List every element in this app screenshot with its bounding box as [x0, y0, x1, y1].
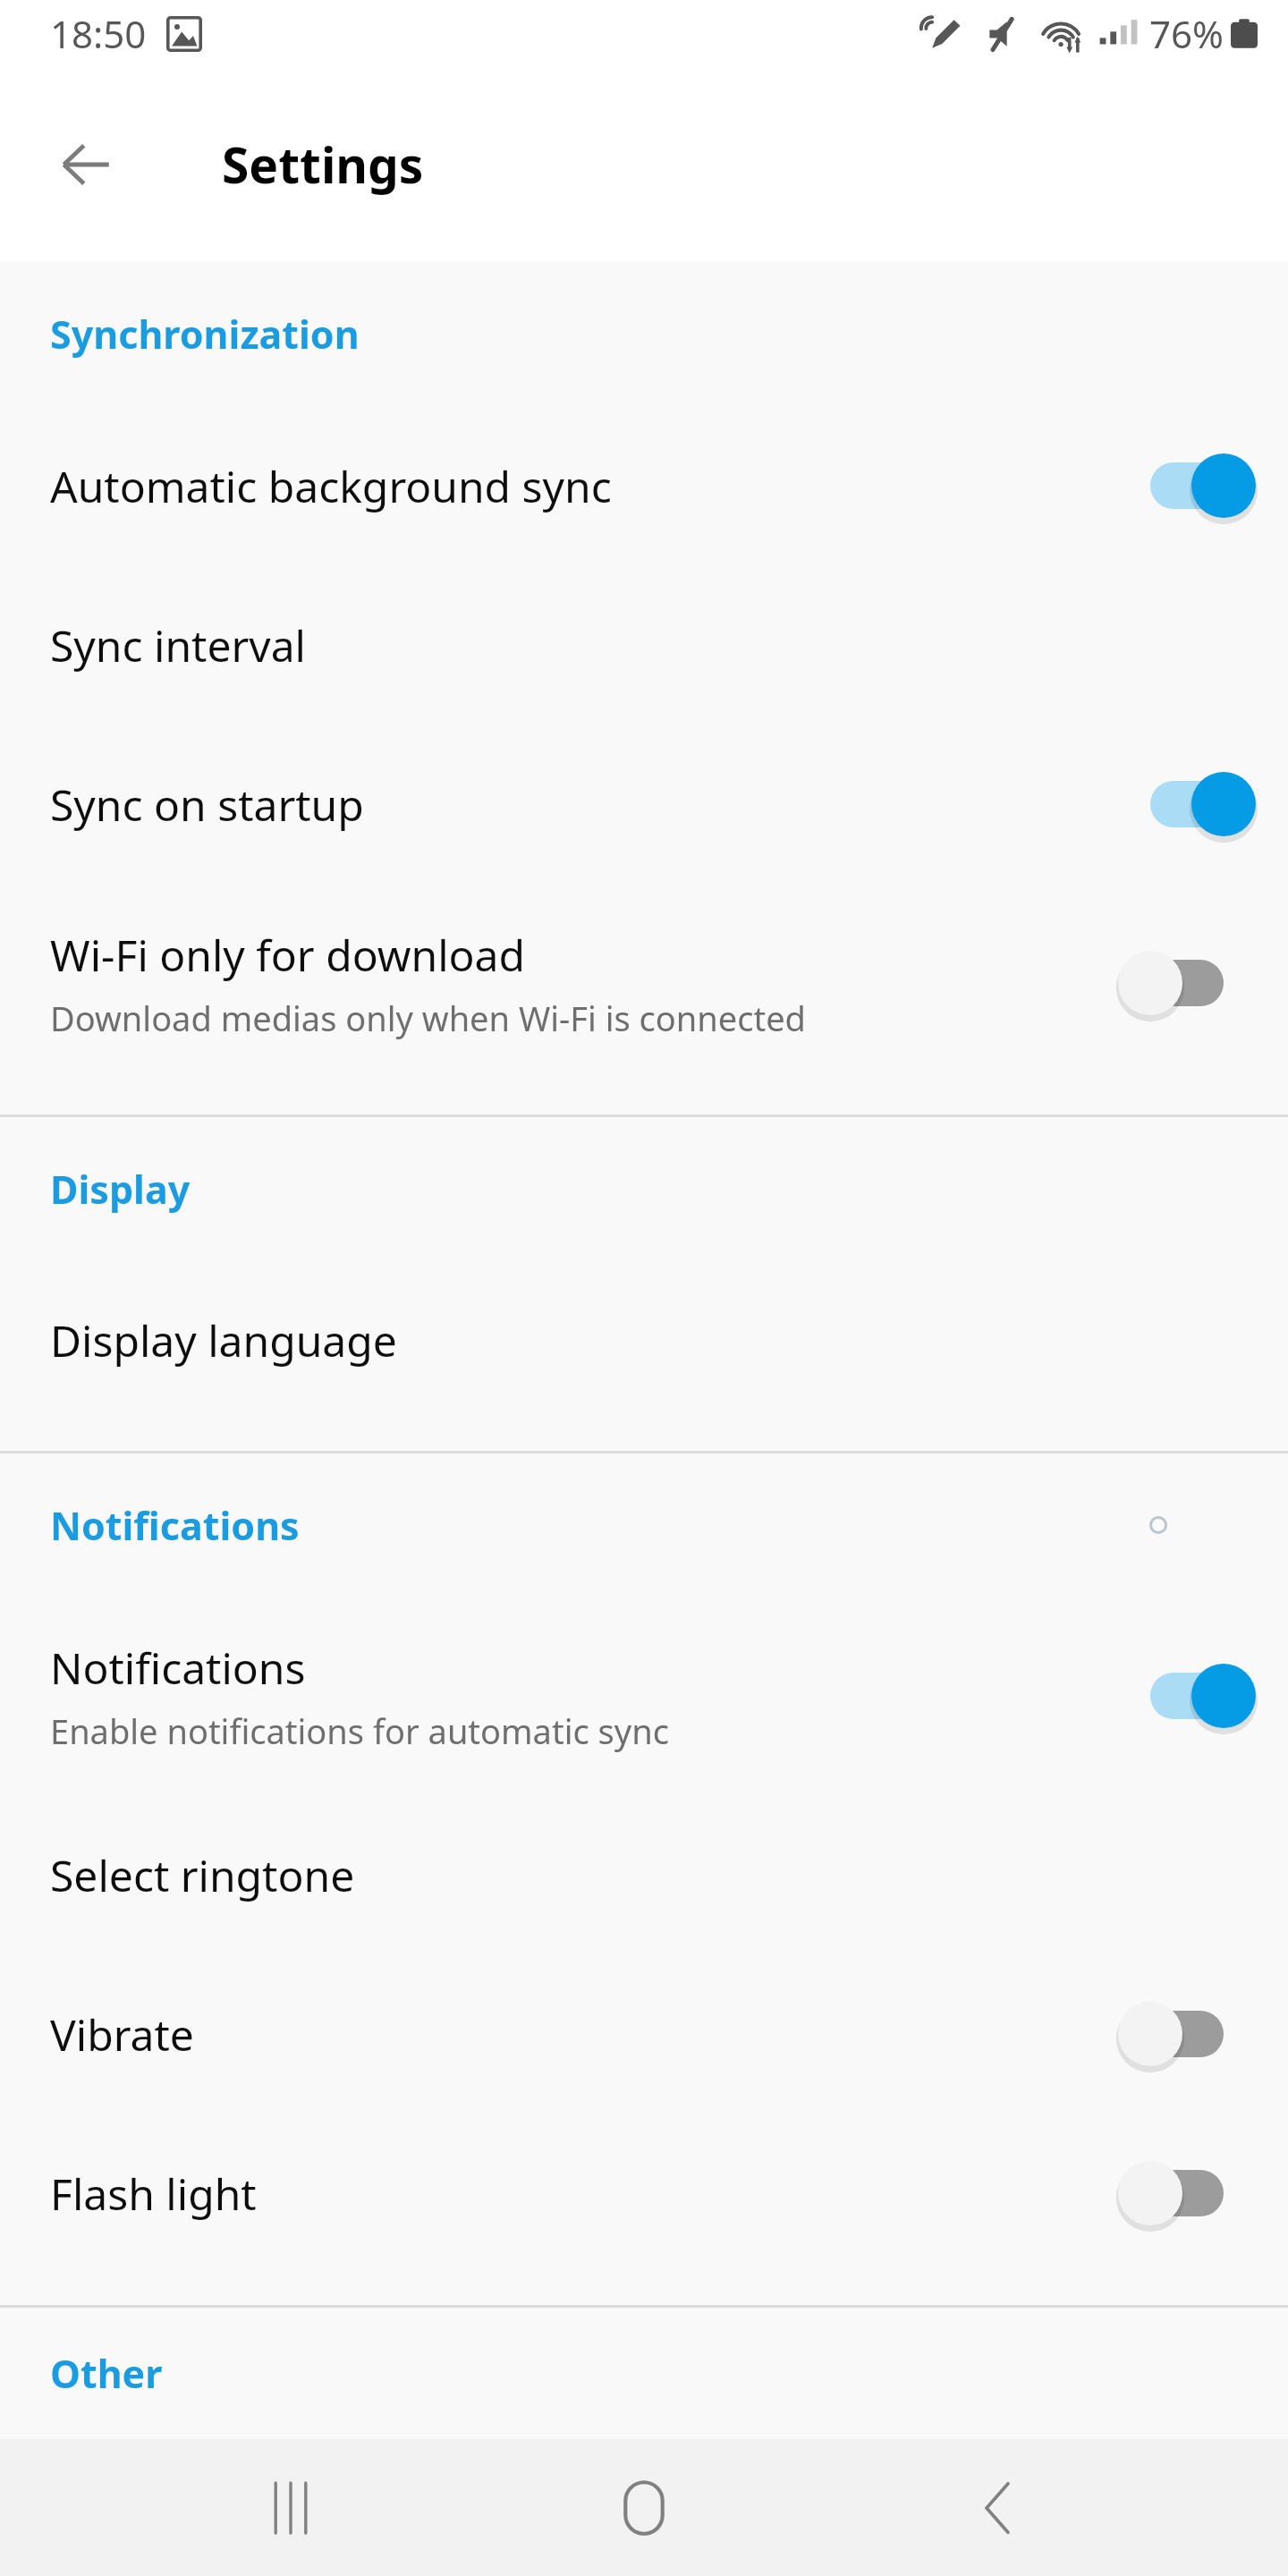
staticText: Notifications [50, 1639, 306, 1697]
button[interactable]: Switch off [1138, 943, 1236, 1023]
staticText: Sync interval [50, 616, 306, 674]
staticText: Select ringtone [50, 1846, 355, 1904]
button[interactable]: Wi-Fi only for download [0, 884, 1288, 1082]
staticText: Display [50, 1163, 191, 1216]
staticText: Sync on startup [50, 775, 364, 834]
staticText: Settings [222, 131, 424, 198]
button[interactable]: Switch on [1138, 1656, 1236, 1736]
button[interactable]: Sync on startup [0, 724, 1288, 884]
button[interactable]: Notifications [0, 1597, 1288, 1795]
button[interactable]: Automatic background sync [0, 406, 1288, 565]
staticText: Notifications [50, 1499, 300, 1552]
staticText: Download medias only when Wi-Fi is conne… [50, 995, 806, 1041]
staticText: Wi-Fi only for download [50, 926, 526, 984]
button[interactable]: Switch off [1138, 1994, 1236, 2074]
staticText: Automatic background sync [50, 457, 612, 515]
staticText: Enable notifications for automatic sync [50, 1707, 669, 1754]
button[interactable]: Display language [0, 1260, 1288, 1419]
staticText: Other [50, 2347, 163, 2400]
button[interactable]: Flash light [0, 2114, 1288, 2273]
staticText: Vibrate [50, 2005, 194, 2063]
button[interactable]: Vibrate [0, 1954, 1288, 2114]
button[interactable]: Back [43, 122, 129, 208]
button[interactable]: Switch on [1138, 445, 1236, 526]
staticText: Display language [50, 1311, 397, 1369]
staticText: Flash light [50, 2165, 257, 2223]
button[interactable]: Select ringtone [0, 1795, 1288, 1954]
button[interactable]: Recents [228, 2445, 353, 2571]
staticText: 76% [1149, 8, 1224, 59]
button[interactable]: Switch on [1138, 764, 1236, 844]
button[interactable]: Sync interval [0, 565, 1288, 724]
staticText: Synchronization [50, 308, 360, 360]
button[interactable]: Back [935, 2445, 1060, 2571]
staticText: 18:50 [50, 8, 147, 59]
button[interactable]: Switch off [1138, 2153, 1236, 2233]
button[interactable]: Home [581, 2445, 707, 2571]
